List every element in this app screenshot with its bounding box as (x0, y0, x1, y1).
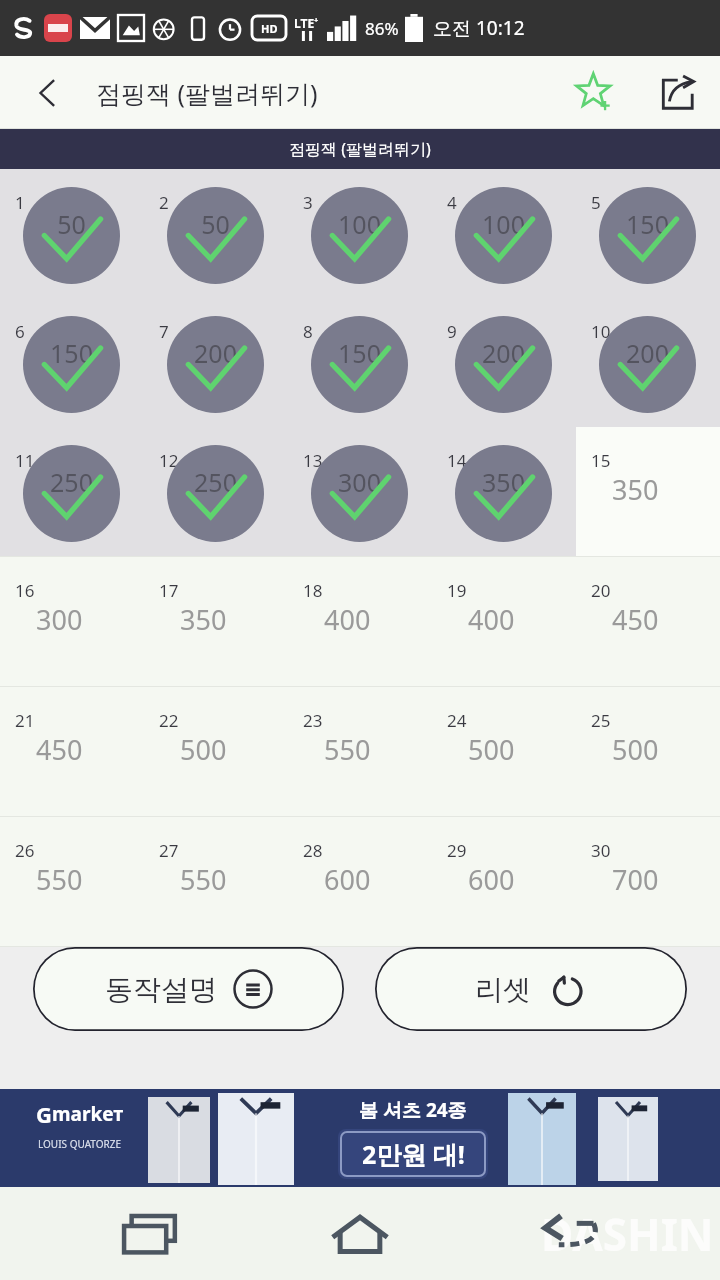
button[interactable]: 27 (144, 817, 288, 946)
staticText: 11 (15, 449, 35, 472)
button[interactable]: 23 (288, 687, 432, 816)
staticText: 500 (612, 731, 659, 768)
button[interactable]: 22 (144, 687, 288, 816)
staticText: HD (261, 21, 278, 36)
staticText: 26 (15, 839, 35, 862)
staticText: 리셋 (475, 972, 531, 1007)
staticText: 24 (447, 709, 467, 732)
staticText: 550 (36, 861, 83, 898)
staticText: 점핑잭 (팔벌려뛰기) (289, 138, 431, 160)
staticText: 29 (447, 839, 467, 862)
button[interactable]: 20 (576, 557, 720, 686)
staticText: 10 (591, 320, 611, 343)
staticText: 350 (612, 471, 659, 508)
staticText: 봄 셔츠 24종 (359, 1097, 467, 1123)
button[interactable]: 6 (0, 298, 144, 427)
button[interactable]: 리셋 (375, 947, 687, 1031)
staticText: 28 (303, 839, 323, 862)
button[interactable]: 25 (576, 687, 720, 816)
button[interactable]: Advertisement (0, 1089, 720, 1187)
staticText: 300 (36, 601, 83, 638)
button[interactable]: 12 (144, 427, 288, 556)
button[interactable]: Add to favorites (556, 56, 634, 129)
staticText: 23 (303, 709, 323, 732)
button[interactable]: Back (510, 1187, 630, 1280)
staticText: 250 (23, 465, 120, 499)
button[interactable]: 1 (0, 169, 144, 298)
staticText: 22 (159, 709, 179, 732)
button[interactable]: 10 (576, 298, 720, 427)
button[interactable]: Home (300, 1187, 420, 1280)
staticText: 50 (23, 207, 120, 241)
staticText: LTE⁺ (294, 15, 319, 31)
button[interactable]: 16 (0, 557, 144, 686)
staticText: 700 (612, 861, 659, 898)
button[interactable]: 동작설명 (33, 947, 344, 1031)
staticText: 5 (591, 191, 601, 214)
staticText: 150 (599, 207, 696, 241)
button[interactable]: 28 (288, 817, 432, 946)
staticText: 2만원 대! (362, 1137, 465, 1171)
button[interactable]: Share (634, 56, 720, 129)
staticText: 500 (468, 731, 515, 768)
staticText: 250 (167, 465, 264, 499)
staticText: 13 (303, 449, 323, 472)
button[interactable]: 9 (432, 298, 576, 427)
button[interactable]: 19 (432, 557, 576, 686)
staticText: 100 (311, 207, 408, 241)
staticText: 17 (159, 579, 179, 602)
staticText: 19 (447, 579, 467, 602)
button[interactable]: 15 (576, 427, 720, 556)
staticText: 150 (23, 336, 120, 370)
staticText: 300 (311, 465, 408, 499)
staticText: 50 (167, 207, 264, 241)
staticText: markeт (52, 1101, 124, 1127)
staticText: 오전 10:12 (433, 15, 525, 41)
button[interactable]: 29 (432, 817, 576, 946)
button[interactable]: 21 (0, 687, 144, 816)
button[interactable]: 4 (432, 169, 576, 298)
staticText: 4 (447, 191, 457, 214)
staticText: LOUIS QUATORZE (38, 1137, 122, 1151)
staticText: 8 (303, 320, 313, 343)
button[interactable]: 11 (0, 427, 144, 556)
button[interactable]: Back (0, 56, 96, 129)
button[interactable]: 14 (432, 427, 576, 556)
staticText: 150 (311, 336, 408, 370)
staticText: 27 (159, 839, 179, 862)
button[interactable]: 26 (0, 817, 144, 946)
staticText: 500 (180, 731, 227, 768)
button[interactable]: 7 (144, 298, 288, 427)
button[interactable]: 24 (432, 687, 576, 816)
staticText: 9 (447, 320, 457, 343)
button[interactable]: Recent apps (90, 1187, 210, 1280)
button[interactable]: 2 (144, 169, 288, 298)
button[interactable]: 30 (576, 817, 720, 946)
button[interactable]: 5 (576, 169, 720, 298)
button[interactable]: 8 (288, 298, 432, 427)
staticText: 600 (324, 861, 371, 898)
staticText: 350 (455, 465, 552, 499)
staticText: 18 (303, 579, 323, 602)
staticText: 2 (159, 191, 169, 214)
staticText: 7 (159, 320, 169, 343)
staticText: 86% (365, 17, 399, 40)
staticText: 550 (324, 731, 371, 768)
staticText: 30 (591, 839, 611, 862)
staticText: 350 (180, 601, 227, 638)
staticText: 21 (15, 709, 35, 732)
staticText: 550 (180, 861, 227, 898)
staticText: 12 (159, 449, 179, 472)
staticText: G (36, 1099, 52, 1129)
staticText: 점핑잭 (팔벌려뛰기) (96, 76, 318, 110)
button[interactable]: 3 (288, 169, 432, 298)
button[interactable]: 13 (288, 427, 432, 556)
button[interactable]: 17 (144, 557, 288, 686)
staticText: 600 (468, 861, 515, 898)
staticText: 16 (15, 579, 35, 602)
staticText: 15 (591, 449, 611, 472)
button[interactable]: 18 (288, 557, 432, 686)
staticText: 200 (455, 336, 552, 370)
staticText: 400 (468, 601, 515, 638)
staticText: 200 (167, 336, 264, 370)
